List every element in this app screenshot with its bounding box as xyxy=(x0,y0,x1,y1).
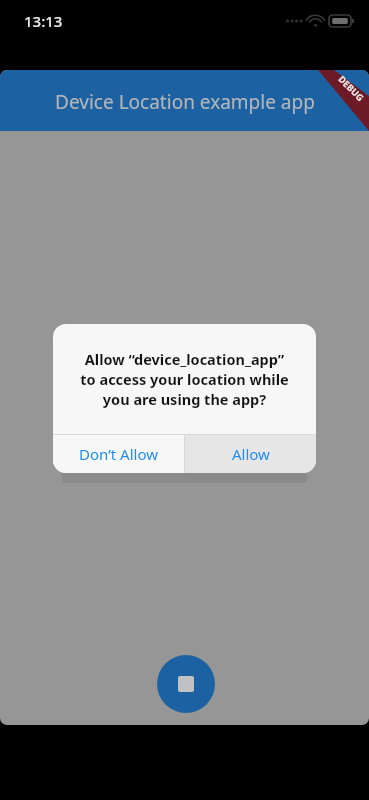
staticText: 13:13 xyxy=(24,11,63,31)
staticText: DEBUG xyxy=(336,73,367,103)
staticText: Device Location example app xyxy=(55,89,315,115)
staticText: Don’t Allow xyxy=(79,444,158,464)
button[interactable] xyxy=(62,455,307,483)
button[interactable]: Don’t Allow xyxy=(53,435,184,473)
staticText: Allow “device_location_app” to access yo… xyxy=(80,349,289,409)
staticText: Allow xyxy=(232,444,270,464)
button[interactable]: Stop xyxy=(157,655,215,713)
button[interactable]: Allow xyxy=(185,435,316,473)
